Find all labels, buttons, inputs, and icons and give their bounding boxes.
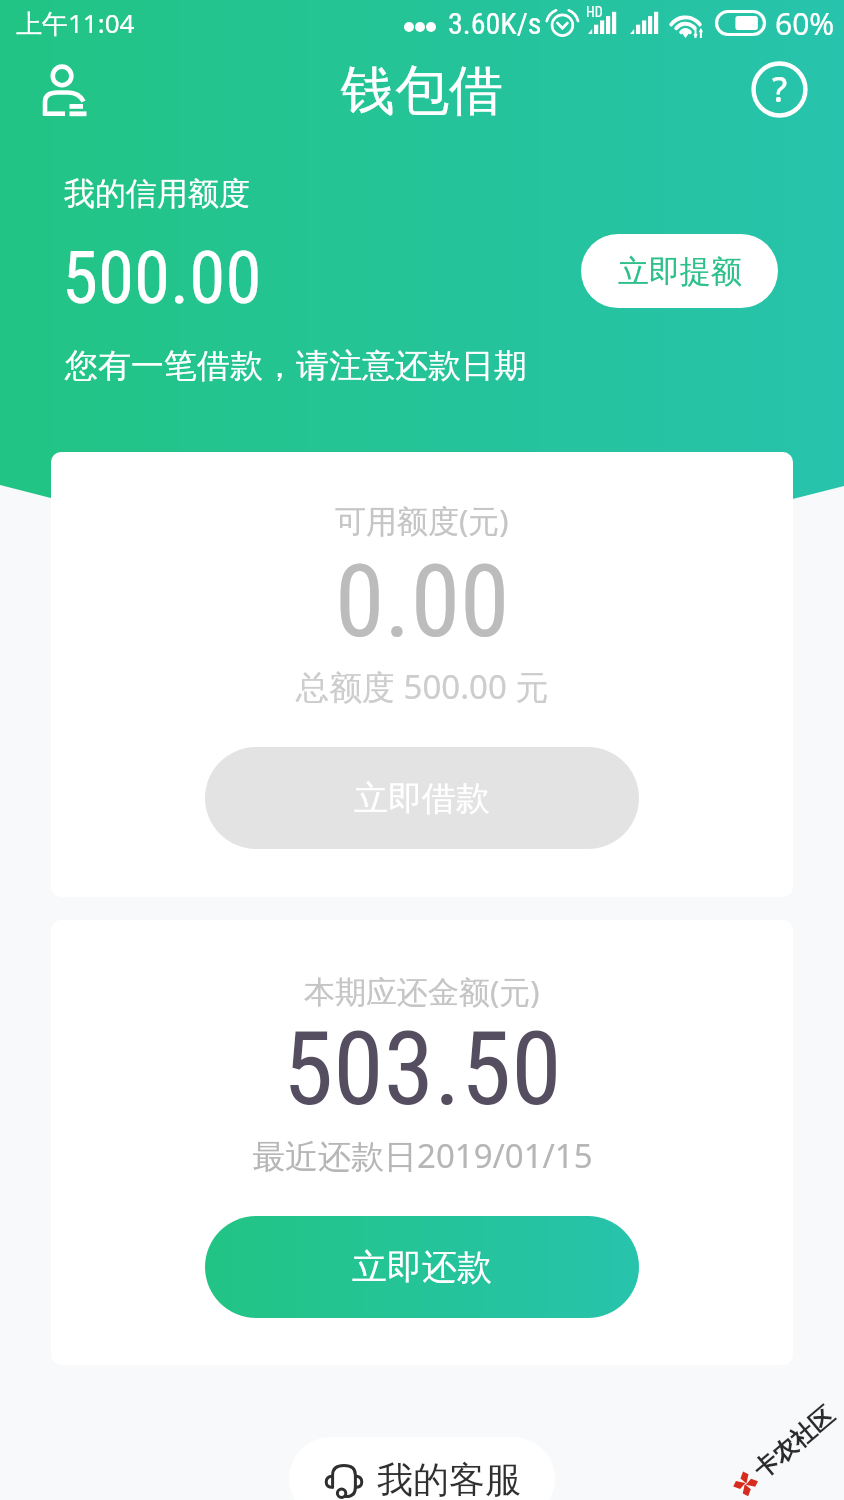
button[interactable]: Help bbox=[751, 61, 808, 118]
staticText: 3.60K/s bbox=[448, 6, 542, 41]
staticText: 0.00 bbox=[335, 543, 510, 660]
staticText: 您有一笔借款，请注意还款日期 bbox=[65, 345, 527, 387]
button[interactable]: 立即借款 bbox=[205, 747, 639, 849]
button[interactable]: My loan records bbox=[44, 64, 87, 117]
staticText: 本期应还金额(元) bbox=[304, 970, 540, 1012]
staticText: 上午11:04 bbox=[16, 5, 135, 41]
staticText: 立即借款 bbox=[354, 777, 490, 820]
staticText: ? bbox=[772, 66, 788, 112]
staticText: 总额度 500.00 元 bbox=[296, 664, 549, 709]
staticText: 60% bbox=[775, 3, 835, 44]
staticText: HD bbox=[586, 4, 603, 20]
staticText: 立即还款 bbox=[352, 1245, 492, 1289]
button[interactable]: 我的客服 bbox=[289, 1437, 555, 1500]
button[interactable]: 立即提额 bbox=[581, 234, 778, 308]
staticText: 钱包借 bbox=[341, 57, 503, 125]
staticText: 卡农社区 bbox=[747, 1400, 840, 1485]
staticText: 500.00 bbox=[62, 235, 262, 321]
staticText: 我的客服 bbox=[377, 1457, 521, 1500]
staticText: 立即提额 bbox=[618, 252, 742, 291]
staticText: 我的信用额度 bbox=[64, 174, 250, 213]
staticText: 最近还款日2019/01/15 bbox=[252, 1133, 593, 1178]
staticText: 503.50 bbox=[283, 1009, 562, 1129]
staticText: 可用额度(元) bbox=[335, 499, 509, 541]
button[interactable]: 立即还款 bbox=[205, 1216, 639, 1318]
